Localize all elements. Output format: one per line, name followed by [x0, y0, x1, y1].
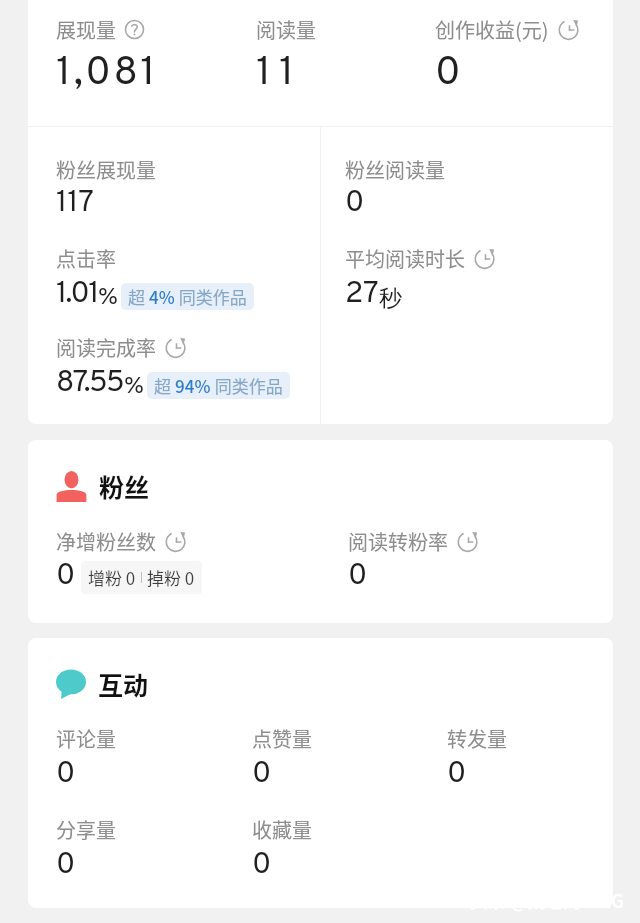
button[interactable]: 评论量 [56, 724, 252, 794]
staticText: % [124, 373, 145, 402]
other: History [558, 19, 580, 41]
staticText: 0 [348, 558, 368, 596]
staticText: 4% [149, 284, 175, 309]
staticText: 转发量 [447, 724, 507, 753]
staticText: 阅读转粉率 [348, 527, 448, 556]
button[interactable]: 阅读量 [256, 0, 435, 100]
other: History [165, 531, 187, 553]
staticText: 分享量 [56, 815, 116, 844]
staticText: 0 [252, 847, 272, 885]
other: History [474, 248, 496, 270]
staticText: 粉丝 [99, 468, 150, 504]
staticText: 同类作品 [175, 284, 247, 309]
staticText: 创作收益(元) [435, 15, 549, 44]
staticText: 0 [56, 756, 76, 794]
button[interactable]: 展现量 [56, 0, 256, 100]
button[interactable]: 点击率 [56, 244, 254, 314]
button[interactable]: 创作收益(元) [435, 0, 613, 100]
staticText: 粉丝阅读量 [345, 155, 445, 184]
staticText: 27 [345, 276, 379, 314]
staticText: 超 [154, 373, 175, 398]
button[interactable]: 粉丝 [56, 468, 150, 504]
staticText: 11 [256, 49, 302, 100]
staticText: 点赞量 [252, 724, 312, 753]
staticText: 头条 @魏老妈5c1G [470, 887, 624, 913]
staticText: 0 [56, 847, 76, 885]
staticText: 87.55 [56, 365, 124, 403]
staticText: 阅读完成率 [56, 333, 156, 362]
staticText: 点击率 [56, 244, 116, 273]
button[interactable]: 粉丝阅读量 [345, 155, 445, 223]
staticText: 同类作品 [211, 373, 283, 398]
staticText: 展现量 [56, 15, 116, 44]
button[interactable]: 点赞量 [252, 724, 447, 794]
staticText: 收藏量 [252, 815, 312, 844]
staticText: 掉粉 0 [147, 565, 195, 590]
button[interactable]: 阅读完成率 [56, 333, 290, 403]
button[interactable]: 超 [121, 283, 254, 310]
staticText: 1,081 [56, 49, 158, 100]
staticText: 117 [56, 185, 94, 223]
staticText: 1.01 [56, 276, 98, 314]
staticText: 0 [447, 756, 467, 794]
button[interactable]: 收藏量 [252, 815, 447, 885]
staticText: 0 [435, 49, 461, 100]
button[interactable]: 超 [147, 372, 290, 399]
staticText: 0 [56, 558, 76, 596]
staticText: 净增粉丝数 [56, 527, 156, 556]
staticText: 粉丝展现量 [56, 155, 156, 184]
button[interactable]: 增粉 0 [81, 561, 202, 594]
staticText: 秒 [379, 284, 402, 313]
other: History [457, 531, 479, 553]
other: Help [124, 19, 145, 40]
button[interactable]: 转发量 [447, 724, 613, 794]
staticText: 94% [175, 373, 211, 398]
staticText: 评论量 [56, 724, 116, 753]
button[interactable]: 平均阅读时长 [345, 244, 496, 314]
button[interactable]: 互动 [56, 666, 149, 702]
other: History [165, 337, 187, 359]
staticText: % [98, 284, 119, 313]
button[interactable]: 粉丝展现量 [56, 155, 156, 223]
staticText: 0 [345, 185, 365, 223]
staticText: 增粉 0 [88, 565, 136, 590]
button[interactable]: 分享量 [56, 815, 252, 885]
staticText: 平均阅读时长 [345, 244, 465, 273]
staticText: 阅读量 [256, 15, 316, 44]
staticText: 互动 [98, 666, 149, 702]
staticText: 超 [128, 284, 149, 309]
staticText: 0 [252, 756, 272, 794]
